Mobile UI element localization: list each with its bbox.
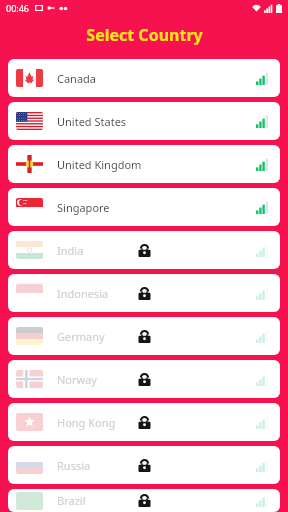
staticText: Select Country [86,24,203,46]
other: Locked [8,446,280,484]
other: Locked [8,403,280,441]
button[interactable]: Indonesia [8,274,280,312]
button[interactable]: Germany [8,317,280,355]
other: Locked [8,360,280,398]
staticText: India [57,243,84,258]
staticText: United Kingdom [57,157,142,172]
button[interactable]: India [8,231,280,269]
other: Locked [8,231,280,269]
staticText: Hong Kong [57,415,116,430]
staticText: Brazil [57,493,86,508]
staticText: Germany [57,329,105,344]
button[interactable]: Canada [8,59,280,97]
button[interactable]: Brazil [8,489,280,512]
staticText: United States [57,114,127,129]
other: Locked [8,317,280,355]
button[interactable]: United States [8,102,280,140]
button[interactable]: Singapore [8,188,280,226]
button[interactable]: United Kingdom [8,145,280,183]
other: Locked [8,274,280,312]
staticText: Russia [57,458,91,473]
other: Locked [8,489,280,512]
staticText: Canada [57,71,97,86]
button[interactable]: Norway [8,360,280,398]
staticText: Singapore [57,200,110,215]
staticText: Norway [57,372,97,387]
button[interactable]: Hong Kong [8,403,280,441]
staticText: Indonesia [57,286,109,301]
staticText: 00:46 [6,2,30,14]
button[interactable]: Russia [8,446,280,484]
